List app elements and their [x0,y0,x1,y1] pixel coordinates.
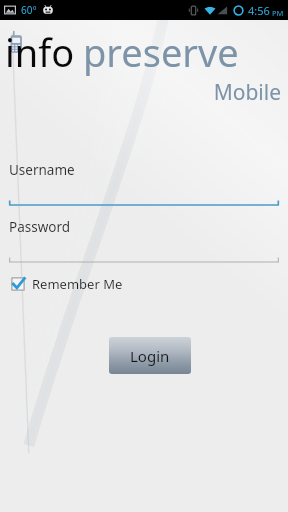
staticText: Mobile [0,78,281,107]
button[interactable]: Password [0,218,288,236]
staticText: PM [272,8,284,18]
staticText: Login [130,346,170,366]
staticText: 60° [21,3,37,17]
button[interactable]: Login [109,337,191,374]
staticText: Username [9,161,75,179]
button[interactable]: Username [0,161,288,179]
staticText: preserve [83,26,239,78]
button[interactable]: Remember Me [9,271,125,297]
staticText: info [5,26,75,78]
staticText: Password [9,218,71,236]
staticText: Remember Me [32,275,123,293]
staticText: 4:56 [248,3,270,18]
